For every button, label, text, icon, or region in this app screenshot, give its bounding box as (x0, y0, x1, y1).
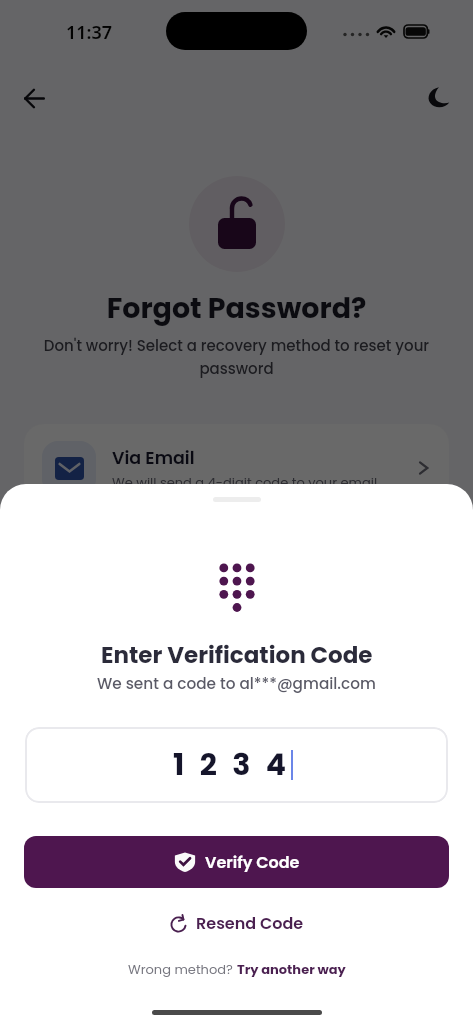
staticText: We sent a code to al***@gmail.com (97, 673, 376, 694)
staticText: Try another way (237, 960, 346, 978)
button[interactable]: Dark mode (419, 79, 457, 117)
button[interactable]: Try another way (237, 960, 346, 978)
button[interactable]: Resend Code (154, 904, 320, 942)
staticText: Enter Verification Code (101, 639, 373, 671)
staticText: We will send a 4-digit code to your emai… (112, 473, 378, 491)
button[interactable]: 1 2 3 4 (25, 727, 448, 803)
staticText: 11:37 (66, 20, 113, 45)
staticText: Resend Code (196, 912, 304, 934)
button[interactable]: Back (15, 79, 53, 117)
button[interactable]: Verify Code (24, 836, 449, 888)
staticText: Wrong method? (128, 960, 237, 978)
staticText: Verify Code (205, 851, 300, 873)
staticText: Don't worry! Select a recovery method to… (38, 335, 435, 379)
staticText: 1 2 3 4 (173, 744, 291, 786)
staticText: Forgot Password? (0, 288, 473, 328)
staticText: Via Email (112, 446, 195, 471)
button[interactable]: Via Email (24, 424, 449, 512)
